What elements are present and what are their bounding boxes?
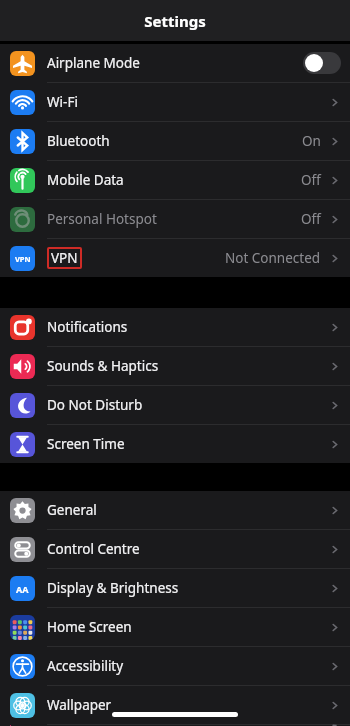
staticText: Airplane Mode: [47, 54, 140, 72]
staticText: Off: [301, 171, 321, 189]
button[interactable]: Airplane Mode switch: [303, 52, 341, 74]
button[interactable]: Mobile Data: [0, 161, 350, 199]
button[interactable]: VPN: [0, 239, 350, 277]
button[interactable]: Wi-Fi: [0, 83, 350, 121]
staticText: AA: [16, 583, 29, 595]
staticText: General: [47, 501, 97, 519]
staticText: On: [302, 132, 321, 150]
button[interactable]: Screen Time: [0, 425, 350, 463]
staticText: Not Connected: [225, 249, 321, 267]
button[interactable]: Do Not Disturb: [0, 386, 350, 424]
staticText: VPN: [15, 254, 31, 264]
staticText: Control Centre: [47, 540, 140, 558]
staticText: Bluetooth: [47, 132, 110, 150]
staticText: Screen Time: [47, 435, 125, 453]
button[interactable]: Wallpaper: [0, 686, 350, 724]
staticText: Sounds & Haptics: [47, 357, 159, 375]
button[interactable]: AA: [0, 569, 350, 607]
button[interactable]: Control Centre: [0, 530, 350, 568]
button[interactable]: Bluetooth: [0, 122, 350, 160]
button[interactable]: Accessibility: [0, 647, 350, 685]
staticText: Mobile Data: [47, 171, 124, 189]
staticText: Wallpaper: [47, 696, 112, 714]
staticText: Personal Hotspot: [47, 210, 157, 228]
button[interactable]: Notifications: [0, 308, 350, 346]
staticText: Wi-Fi: [47, 93, 78, 111]
button[interactable]: General: [0, 491, 350, 529]
staticText: Do Not Disturb: [47, 396, 143, 414]
staticText: Off: [301, 210, 321, 228]
staticText: Accessibility: [47, 657, 124, 675]
button[interactable]: Sounds & Haptics: [0, 347, 350, 385]
staticText: VPN: [51, 249, 78, 267]
staticText: Settings: [144, 11, 206, 31]
button[interactable]: Airplane Mode: [0, 44, 350, 82]
staticText: Display & Brightness: [47, 579, 179, 597]
staticText: Home Screen: [47, 618, 132, 636]
button[interactable]: Home Screen: [0, 608, 350, 646]
button[interactable]: Siri & Search: [0, 725, 350, 726]
staticText: Notifications: [47, 318, 128, 336]
button[interactable]: Personal Hotspot: [0, 200, 350, 238]
